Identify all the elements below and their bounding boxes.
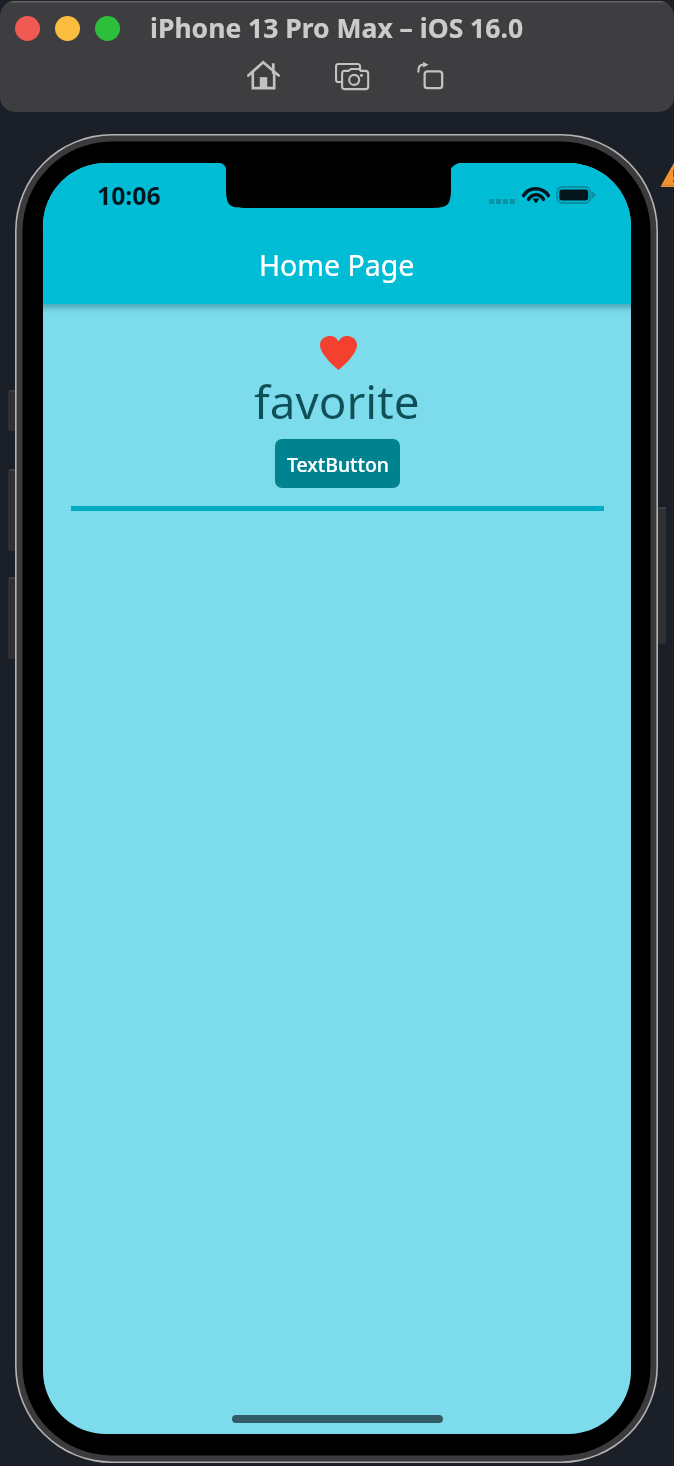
button[interactable]: Screenshot	[335, 63, 369, 90]
staticText: Home Page	[259, 246, 415, 285]
staticText: TextButton	[287, 451, 389, 477]
staticText: 10:06	[97, 178, 161, 212]
staticText: iPhone 13 Pro Max – iOS 16.0	[150, 10, 524, 46]
staticText: favorite	[254, 370, 420, 432]
button[interactable]: TextButton	[275, 439, 400, 488]
button[interactable]: Home	[248, 62, 279, 89]
button[interactable]: Rotate	[417, 61, 444, 90]
